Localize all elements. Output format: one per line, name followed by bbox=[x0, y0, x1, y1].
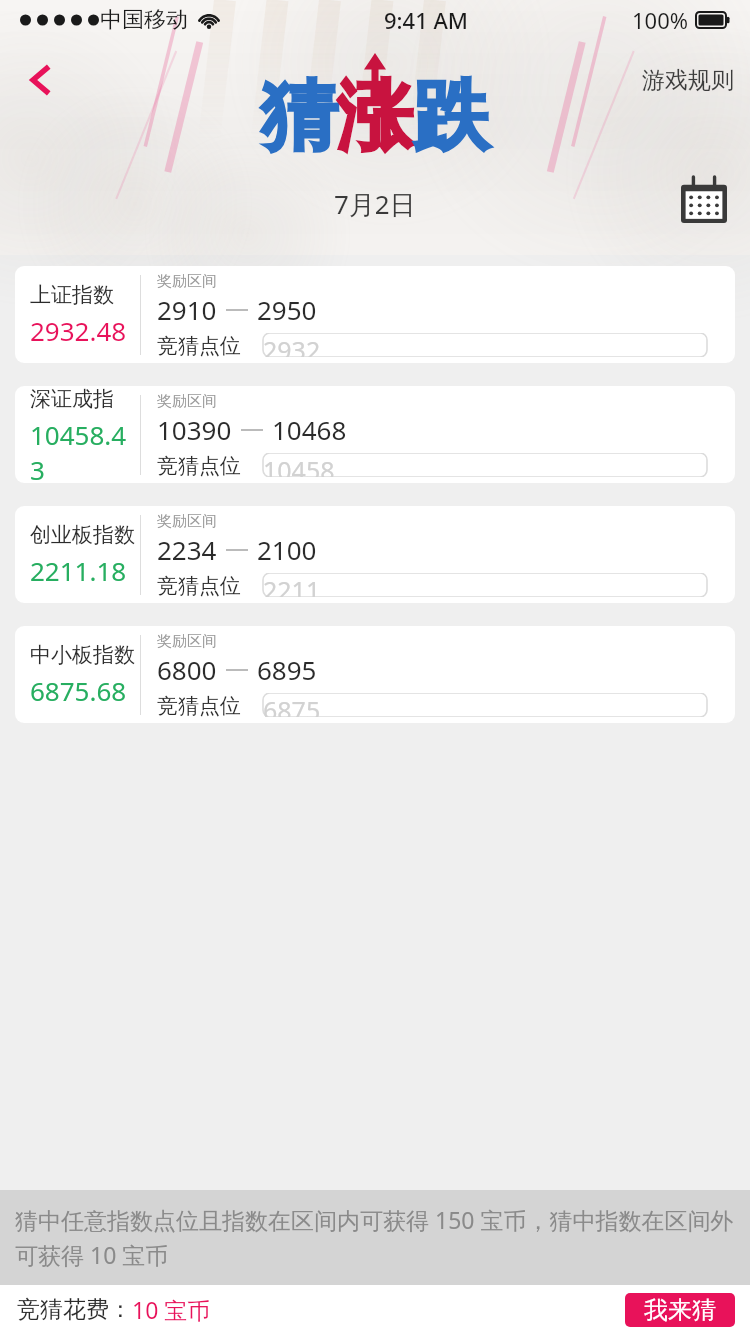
staticText: 奖励区间 bbox=[157, 392, 217, 411]
staticText: 10458 bbox=[263, 453, 335, 477]
staticText: 竞猜点位 bbox=[157, 333, 241, 357]
staticText: 100% bbox=[632, 5, 689, 35]
staticText: 10468 bbox=[272, 412, 347, 447]
button[interactable]: 中小板指数 bbox=[15, 626, 735, 723]
button[interactable]: 我来猜 bbox=[625, 1293, 735, 1327]
staticText: 2932 bbox=[263, 333, 321, 357]
staticText: 猜中任意指数点位且指数在区间内可获得 150 宝币，猜中指数在区间外可获得 10… bbox=[15, 1204, 735, 1271]
staticText: 深证成指 bbox=[30, 386, 114, 412]
staticText: 7月2日 bbox=[334, 186, 416, 222]
staticText: 上证指数 bbox=[30, 282, 114, 308]
staticText: 奖励区间 bbox=[157, 632, 217, 651]
staticText: 6895 bbox=[257, 652, 317, 687]
button[interactable]: Back bbox=[14, 52, 70, 108]
staticText: 跌 bbox=[413, 69, 489, 165]
staticText: 竞猜点位 bbox=[157, 453, 241, 477]
button[interactable]: 2211 bbox=[251, 573, 719, 597]
staticText: 中国移动 bbox=[100, 6, 188, 34]
staticText: 10458.43 bbox=[30, 417, 140, 483]
staticText: 涨 bbox=[337, 69, 413, 165]
staticText: 竞猜花费： bbox=[17, 1295, 132, 1324]
staticText: 2211.18 bbox=[30, 553, 127, 588]
staticText: 创业板指数 bbox=[30, 522, 135, 548]
staticText: 竞猜点位 bbox=[157, 573, 241, 597]
button[interactable]: 创业板指数 bbox=[15, 506, 735, 603]
staticText: 我来猜 bbox=[644, 1295, 716, 1325]
staticText: 2234 bbox=[157, 532, 217, 567]
staticText: 2950 bbox=[257, 292, 317, 327]
button[interactable]: 10458 bbox=[251, 453, 719, 477]
staticText: 10 宝币 bbox=[132, 1294, 211, 1325]
staticText: 2932.48 bbox=[30, 313, 127, 348]
staticText: 6875 bbox=[263, 693, 321, 717]
staticText: 2211 bbox=[263, 573, 321, 597]
staticText: 猜 bbox=[261, 69, 337, 165]
staticText: 游戏规则 bbox=[642, 66, 734, 95]
staticText: 2100 bbox=[257, 532, 317, 567]
staticText: 2910 bbox=[157, 292, 217, 327]
staticText: 9:41 AM bbox=[384, 5, 469, 35]
button[interactable]: 上证指数 bbox=[15, 266, 735, 363]
button[interactable]: Calendar bbox=[676, 172, 732, 228]
button[interactable]: 6875 bbox=[251, 693, 719, 717]
staticText: 竞猜点位 bbox=[157, 693, 241, 717]
staticText: 中小板指数 bbox=[30, 642, 135, 668]
staticText: 奖励区间 bbox=[157, 512, 217, 531]
staticText: 奖励区间 bbox=[157, 272, 217, 291]
staticText: 6875.68 bbox=[30, 673, 127, 708]
staticText: 10390 bbox=[157, 412, 232, 447]
button[interactable]: 游戏规则 bbox=[626, 60, 750, 101]
staticText: 6800 bbox=[157, 652, 217, 687]
button[interactable]: 2932 bbox=[251, 333, 719, 357]
button[interactable]: 深证成指 bbox=[15, 386, 735, 483]
